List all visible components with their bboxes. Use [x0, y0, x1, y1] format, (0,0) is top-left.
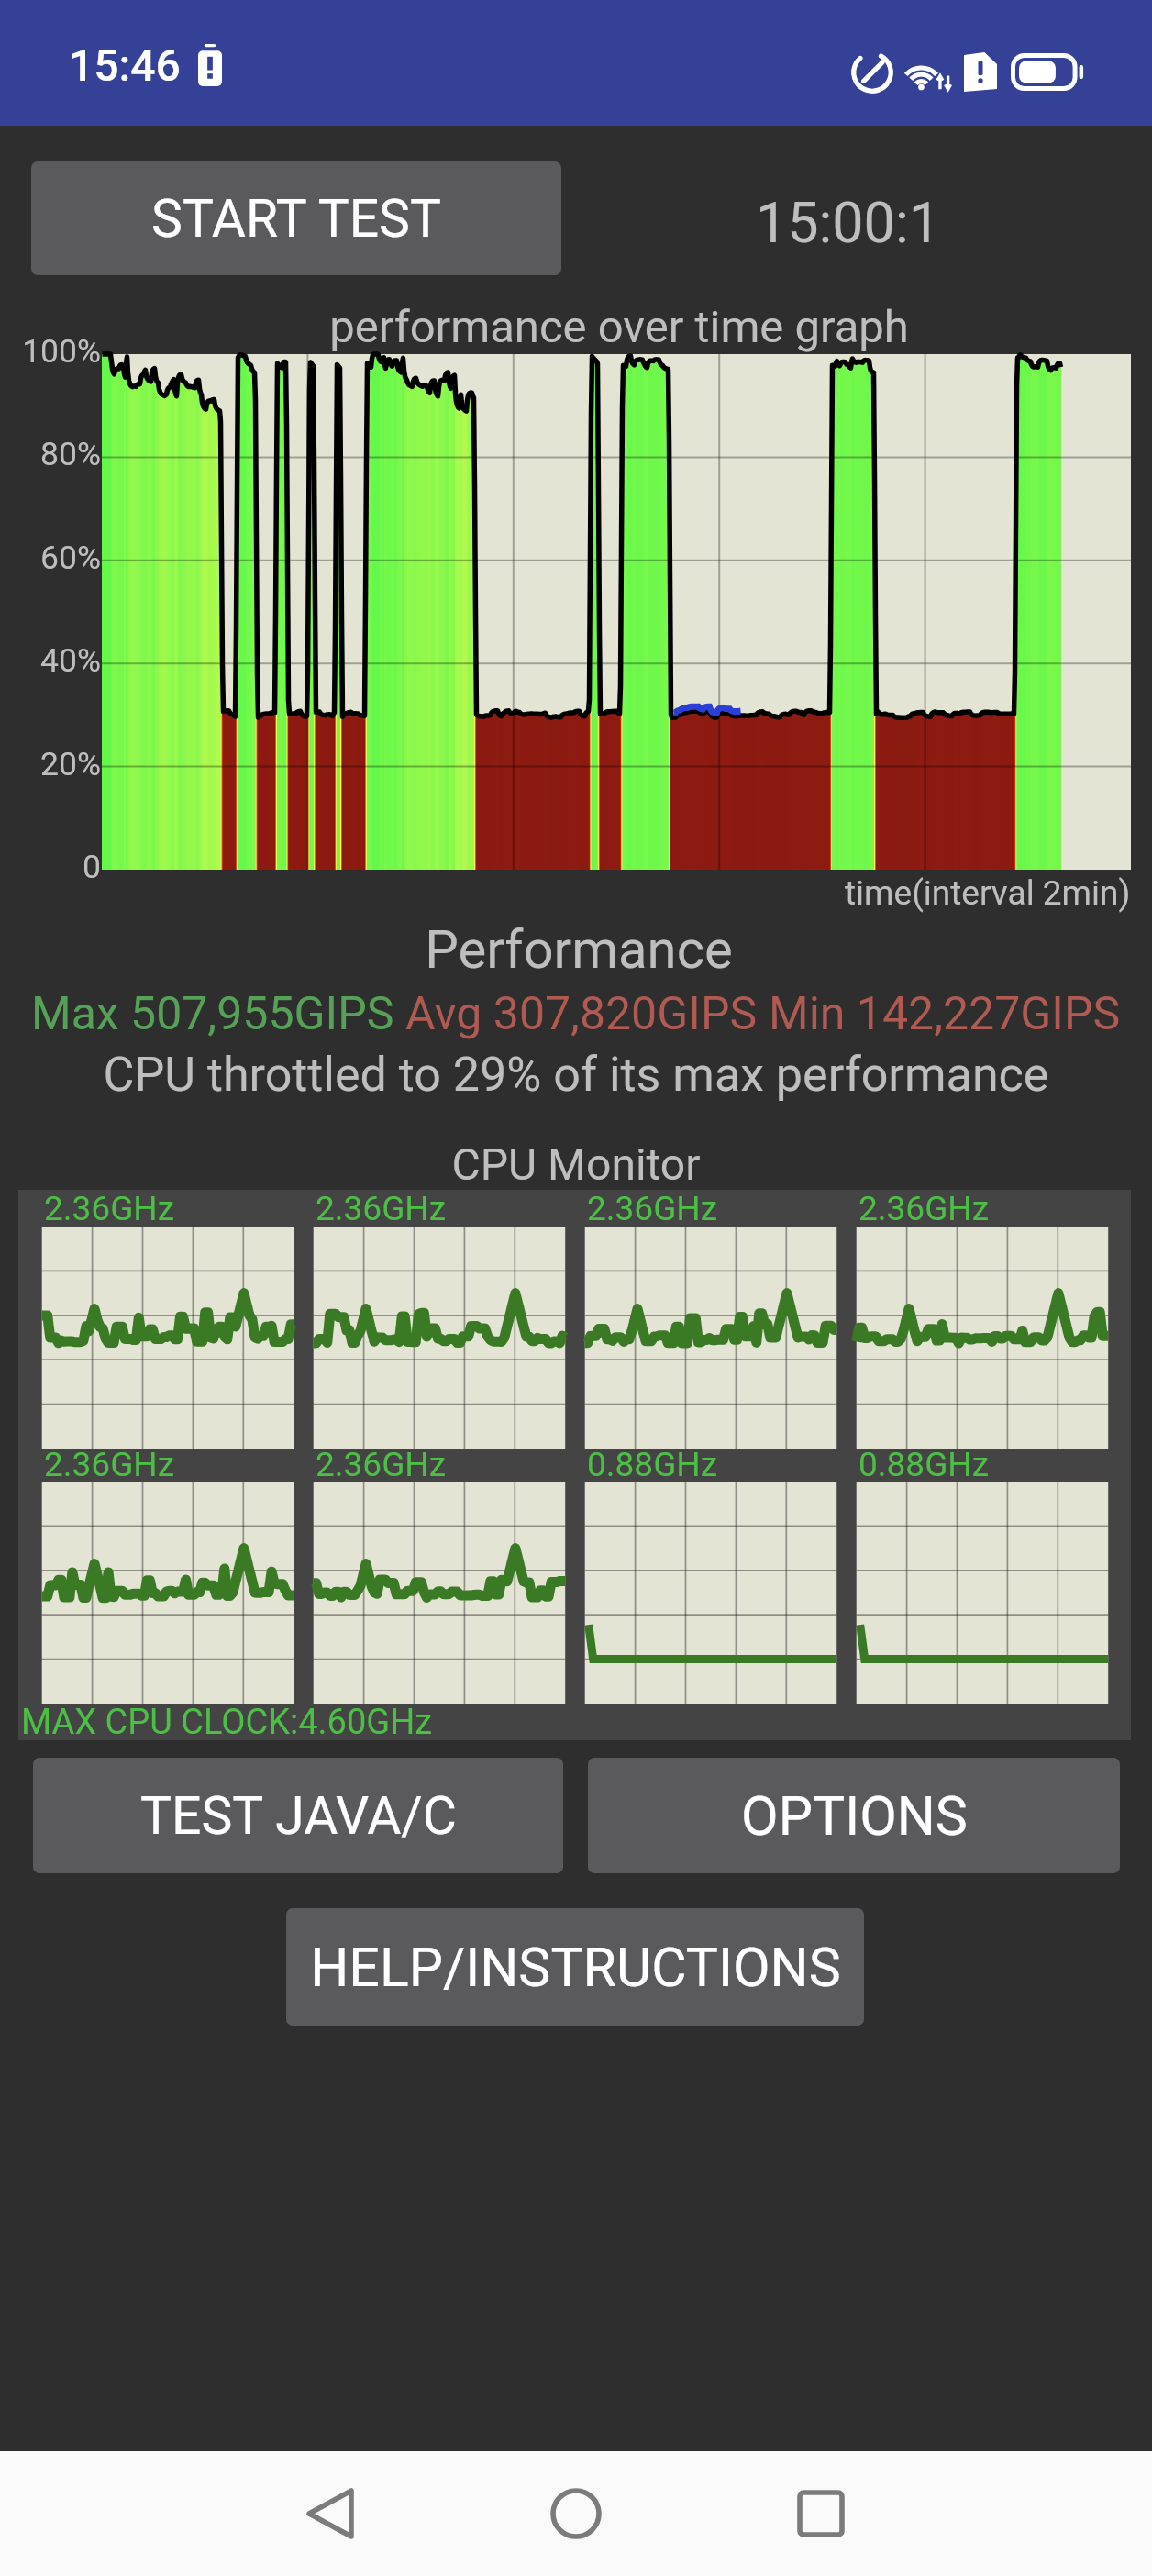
- staticText: OPTIONS: [741, 1784, 968, 1848]
- button[interactable]: Home: [512, 2460, 640, 2567]
- staticText: 2.36GHz: [587, 1189, 718, 1228]
- button[interactable]: TEST JAVA/C: [33, 1758, 563, 1873]
- staticText: 2.36GHz: [316, 1189, 447, 1228]
- button[interactable]: Back: [266, 2460, 394, 2567]
- staticText: TEST JAVA/C: [140, 1785, 457, 1847]
- staticText: 20%: [0, 745, 101, 783]
- staticText: 40%: [0, 641, 101, 680]
- staticText: CPU Monitor: [0, 1138, 1152, 1190]
- staticText: MAX CPU CLOCK:4.60GHz: [21, 1702, 433, 1743]
- button[interactable]: HELP/INSTRUCTIONS: [286, 1908, 864, 2026]
- staticText: 15:00:1: [756, 190, 940, 255]
- staticText: 0.88GHz: [587, 1445, 718, 1484]
- staticText: 2.36GHz: [858, 1189, 990, 1228]
- staticText: 2.36GHz: [44, 1445, 175, 1484]
- staticText: time(interval 2min): [845, 873, 1131, 913]
- staticText: 80%: [0, 435, 101, 473]
- staticText: 100%: [0, 332, 101, 371]
- staticText: 60%: [0, 539, 101, 577]
- staticText: Avg 307,820GIPS: [405, 987, 769, 1041]
- staticText: 0: [0, 848, 101, 886]
- staticText: Min 142,227GIPS: [769, 987, 1121, 1041]
- staticText: CPU throttled to 29% of its max performa…: [0, 1047, 1152, 1103]
- staticText: Max 507,955GIPS: [31, 987, 405, 1041]
- staticText: START TEST: [151, 188, 441, 250]
- staticText: Performance: [6, 918, 1152, 981]
- staticText: performance over time graph: [86, 301, 1152, 353]
- staticText: 2.36GHz: [316, 1445, 447, 1484]
- staticText: HELP/INSTRUCTIONS: [310, 1936, 841, 1999]
- button[interactable]: Recent apps: [757, 2460, 885, 2567]
- staticText: 2.36GHz: [44, 1189, 175, 1228]
- button[interactable]: START TEST: [31, 161, 561, 275]
- staticText: 0.88GHz: [858, 1445, 990, 1484]
- staticText: 15:46: [69, 39, 181, 91]
- button[interactable]: OPTIONS: [588, 1758, 1120, 1873]
